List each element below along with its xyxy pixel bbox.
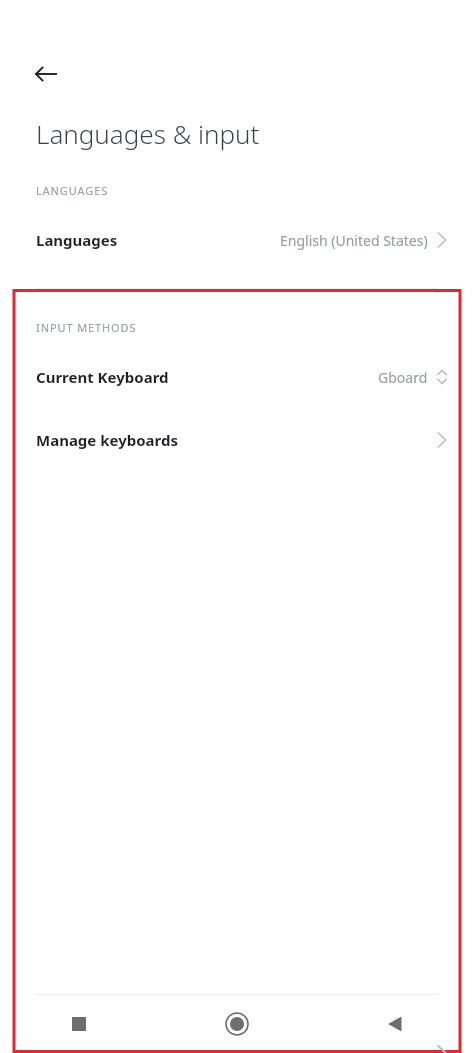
button[interactable]: Recent apps	[0, 995, 158, 1053]
button[interactable]: Manage keyboards	[0, 405, 474, 475]
staticText: INPUT METHODS	[36, 320, 137, 335]
staticText: Current Keyboard	[36, 367, 169, 387]
button[interactable]: Home	[158, 995, 316, 1053]
staticText: Languages	[36, 230, 118, 250]
staticText: Gboard	[378, 368, 428, 387]
button[interactable]: Languages	[0, 212, 474, 268]
staticText: LANGUAGES	[36, 183, 109, 198]
staticText: Manage keyboards	[36, 430, 178, 450]
button[interactable]: Current Keyboard	[0, 349, 474, 405]
staticText: Languages & input	[36, 116, 260, 151]
button[interactable]: Back	[316, 995, 474, 1053]
staticText: English (United States)	[280, 231, 428, 250]
button[interactable]: Back	[28, 56, 64, 92]
